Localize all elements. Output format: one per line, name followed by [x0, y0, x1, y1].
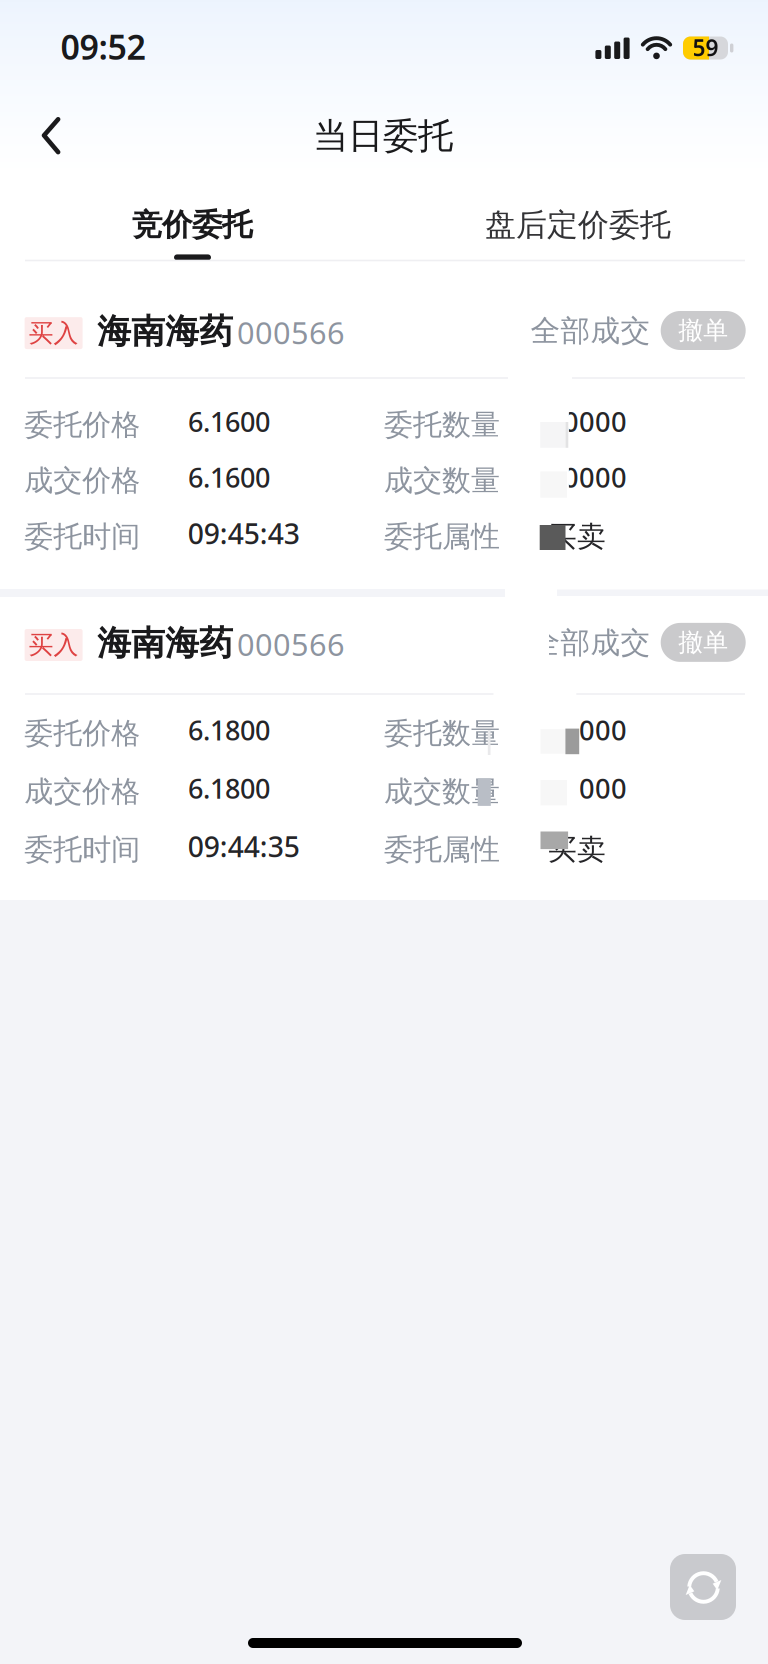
staticText: 撤单 — [678, 315, 728, 346]
staticText: 买入 — [29, 317, 79, 349]
staticText: 委托价格 — [24, 715, 140, 752]
staticText: 买卖 — [548, 519, 606, 555]
button[interactable]: Back — [18, 107, 84, 163]
staticText: 000566 — [237, 311, 345, 353]
staticText: 委托属性 — [384, 831, 500, 868]
staticText: 10000 — [547, 711, 627, 748]
staticText: 09:52 — [60, 23, 145, 70]
staticText: 6.1800 — [188, 770, 270, 807]
staticText: 委托时间 — [24, 518, 140, 555]
staticText: 买卖 — [548, 831, 606, 868]
staticText: 000566 — [237, 623, 345, 665]
staticText: 09:44:35 — [188, 827, 300, 865]
staticText: 59 — [692, 32, 718, 63]
staticText: 全部成交 — [530, 624, 650, 661]
staticText: 10000 — [547, 770, 627, 807]
staticText: 成交数量 — [384, 462, 500, 499]
staticText: 10000 — [547, 459, 627, 496]
staticText: 成交数量 — [384, 773, 500, 810]
staticText: 6.1600 — [188, 459, 270, 496]
staticText: 委托时间 — [24, 831, 140, 868]
staticText: 委托数量 — [384, 407, 500, 443]
staticText: 委托价格 — [24, 407, 140, 443]
staticText: 委托数量 — [384, 715, 500, 752]
staticText: 海南海药 — [97, 622, 233, 665]
staticText: 海南海药 — [97, 310, 233, 353]
button[interactable]: 盘后定价委托 — [386, 185, 768, 265]
staticText: 盘后定价委托 — [485, 205, 671, 244]
staticText: 买入 — [29, 629, 79, 661]
button[interactable]: Refresh — [670, 1554, 736, 1620]
staticText: 6.1600 — [188, 403, 270, 440]
staticText: 09:45:43 — [188, 514, 300, 553]
staticText: 成交价格 — [24, 462, 140, 499]
staticText: 10000 — [547, 403, 627, 440]
button[interactable]: 撤单 — [661, 623, 746, 662]
staticText: 6.1800 — [188, 712, 270, 748]
staticText: 当日委托 — [313, 114, 453, 158]
button[interactable]: 撤单 — [661, 311, 746, 350]
staticText: 竞价委托 — [132, 206, 252, 244]
staticText: 委托属性 — [384, 518, 500, 555]
staticText: 成交价格 — [24, 773, 140, 810]
staticText: 撤单 — [678, 627, 728, 658]
button[interactable]: 竞价委托 — [0, 185, 384, 265]
staticText: 全部成交 — [530, 312, 650, 350]
